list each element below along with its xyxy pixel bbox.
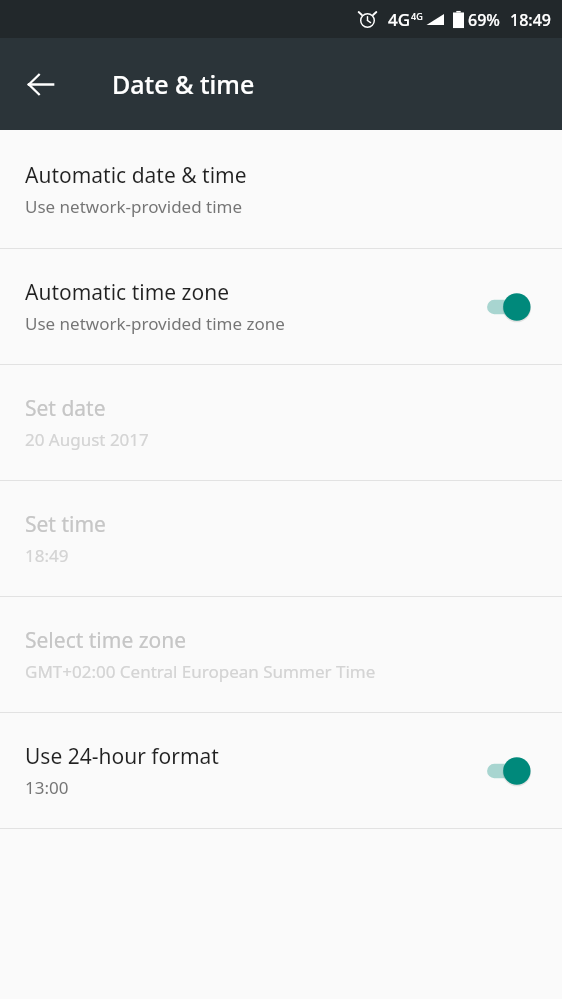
button[interactable]: Back <box>8 52 72 116</box>
staticText: 18:49 <box>25 544 69 567</box>
staticText: Use 24-hour format <box>25 742 219 771</box>
staticText: 13:00 <box>25 776 69 799</box>
staticText: Date & time <box>112 67 255 101</box>
button[interactable]: Automatic date & time <box>0 130 562 248</box>
staticText: Set date <box>25 394 106 423</box>
button[interactable]: Set date <box>0 365 562 480</box>
staticText: 4G <box>388 8 411 31</box>
staticText: Use network-provided time <box>25 195 243 218</box>
button[interactable]: Use 24-hour format <box>0 713 562 828</box>
staticText: GMT+02:00 Central European Summer Time <box>25 660 376 683</box>
staticText: Set time <box>25 510 106 539</box>
staticText: 4G <box>411 10 423 22</box>
staticText: 69% <box>468 9 500 31</box>
button[interactable]: Toggle on <box>484 747 540 795</box>
staticText: Use network-provided time zone <box>25 312 285 335</box>
button[interactable]: Set time <box>0 481 562 596</box>
button[interactable]: Toggle on <box>484 283 540 331</box>
staticText: Automatic date & time <box>25 161 247 190</box>
staticText: 18:49 <box>510 9 551 31</box>
button[interactable]: Automatic time zone <box>0 249 562 364</box>
staticText: 20 August 2017 <box>25 428 149 451</box>
staticText: Select time zone <box>25 626 187 655</box>
staticText: Automatic time zone <box>25 278 229 307</box>
button[interactable]: Select time zone <box>0 597 562 712</box>
